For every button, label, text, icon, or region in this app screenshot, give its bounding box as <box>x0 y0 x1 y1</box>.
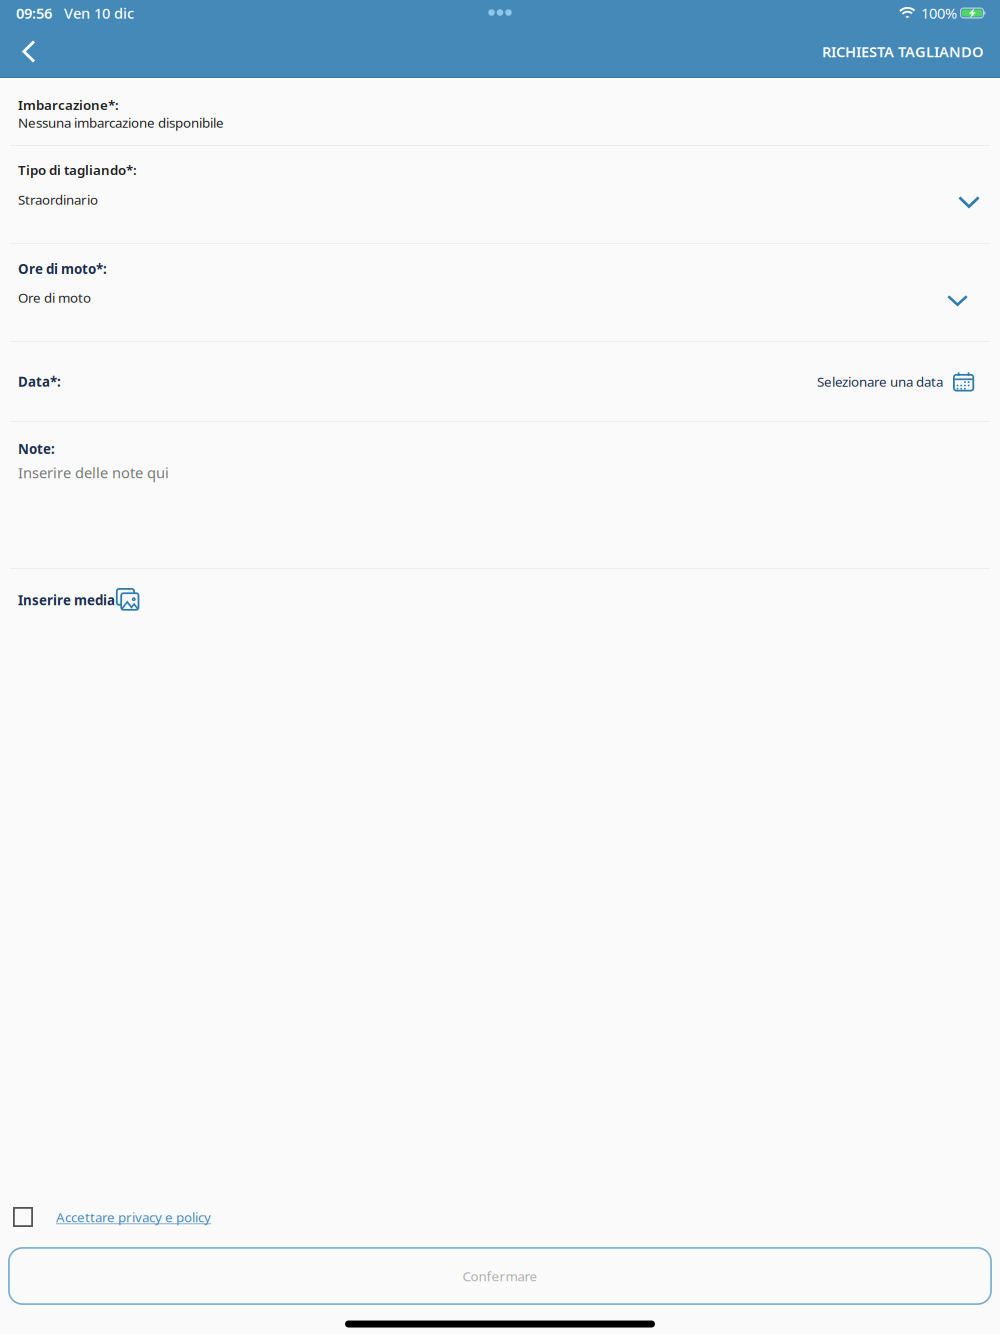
staticText: Accettare privacy e policy <box>56 1208 211 1226</box>
staticText: Data*: <box>18 373 61 390</box>
button[interactable]: Data*: <box>0 342 1000 421</box>
button[interactable]: Indietro <box>6 28 52 74</box>
button[interactable]: Inserire media <box>0 569 1000 631</box>
staticText: Nessuna imbarcazione disponibile <box>18 114 224 131</box>
staticText: Confermare <box>462 1267 537 1285</box>
staticText: Inserire media <box>18 591 115 609</box>
staticText: Ore di moto <box>18 289 91 306</box>
staticText: Straordinario <box>18 191 98 208</box>
button[interactable]: Tipo di tagliando*: <box>0 146 1000 243</box>
staticText: Imbarcazione*: <box>18 96 119 114</box>
button[interactable]: Accettare privacy e policy <box>0 1200 1000 1234</box>
staticText: 09:56 <box>16 3 52 23</box>
staticText: Ore di moto*: <box>18 260 107 278</box>
staticText: Inserire delle note qui <box>18 463 169 482</box>
staticText: Ven 10 dic <box>64 3 134 23</box>
staticText: 100% <box>921 3 957 23</box>
staticText: Note: <box>18 440 55 458</box>
staticText: RICHIESTA TAGLIANDO <box>822 42 984 61</box>
button[interactable]: Confermare <box>8 1247 992 1305</box>
button[interactable]: Ore di moto*: <box>0 244 1000 341</box>
staticText: Selezionare una data <box>817 373 943 390</box>
staticText: Tipo di tagliando*: <box>18 161 137 179</box>
